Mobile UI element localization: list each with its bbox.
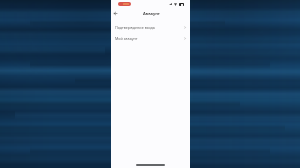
button[interactable]: Recording indicator (118, 2, 131, 6)
button[interactable]: Back (111, 9, 120, 18)
staticText: Мой аккаунт (115, 36, 138, 41)
staticText: Подтверждение входа (115, 25, 155, 30)
staticText: Аккаунт (143, 11, 160, 16)
button[interactable]: Мой аккаунт (111, 33, 190, 44)
button[interactable]: Подтверждение входа (111, 22, 190, 33)
